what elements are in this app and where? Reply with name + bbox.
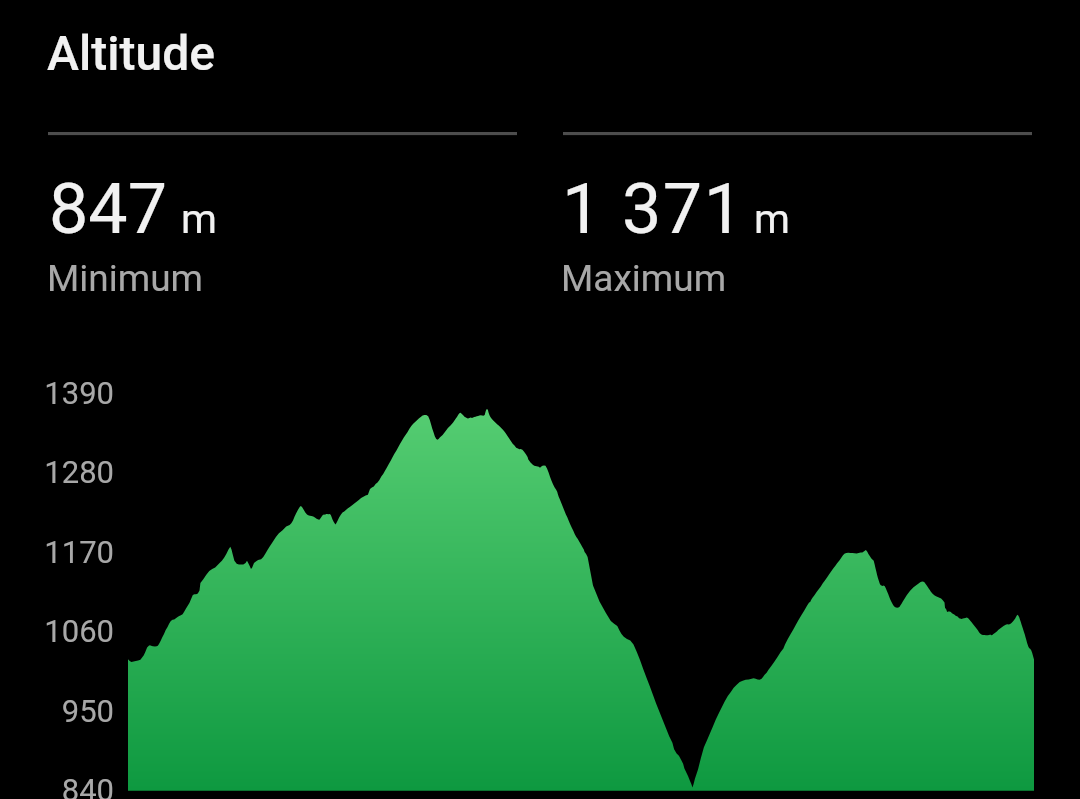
staticText: 1 371 [562, 168, 745, 250]
staticText: 950 [2, 693, 114, 729]
button[interactable]: 1 371 [563, 132, 1032, 292]
staticText: 1280 [2, 454, 114, 490]
staticText: 1390 [2, 375, 114, 411]
staticText: Altitude [47, 25, 216, 81]
staticText: 847 [49, 168, 168, 250]
button[interactable]: Altitude profile chart [0, 360, 1080, 799]
staticText: Maximum [561, 257, 727, 300]
staticText: m [181, 195, 217, 243]
staticText: m [754, 195, 790, 243]
staticText: 840 [2, 772, 114, 799]
staticText: Minimum [47, 257, 204, 300]
staticText: 1170 [2, 534, 114, 570]
button[interactable]: 847 [48, 132, 517, 292]
staticText: 1060 [2, 613, 114, 649]
